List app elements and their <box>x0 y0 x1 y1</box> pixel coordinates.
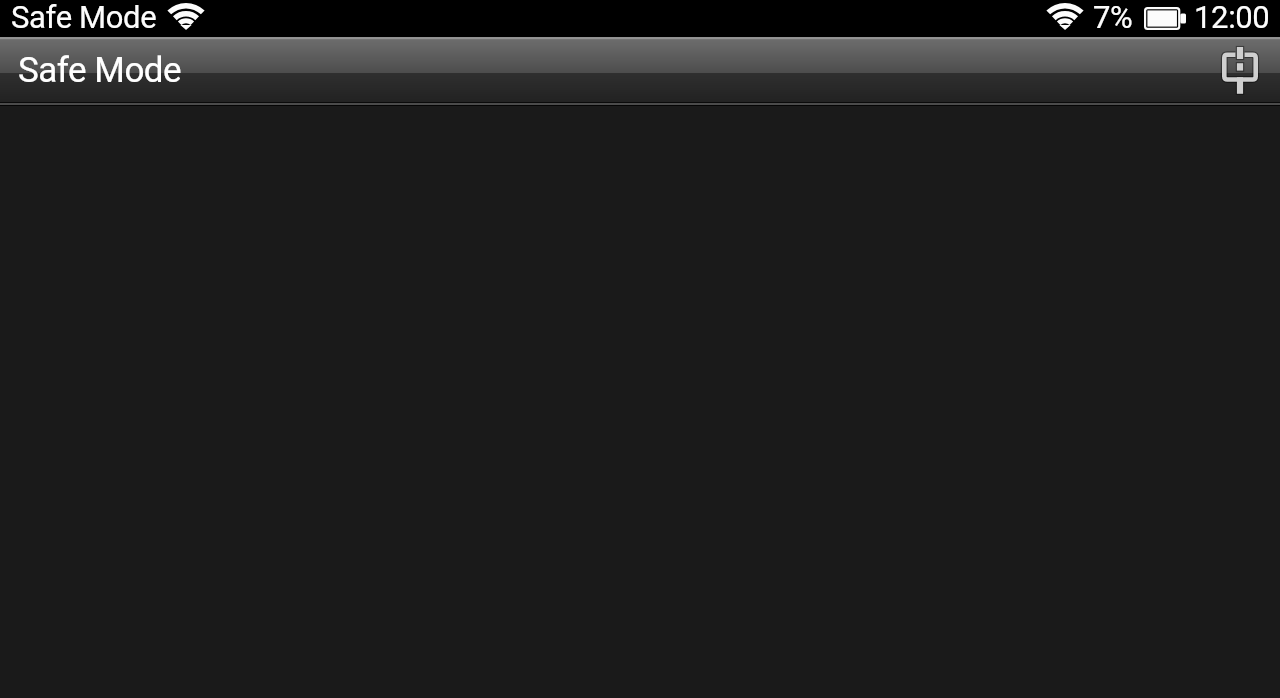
staticText: Safe Mode <box>11 0 157 35</box>
staticText: 7% <box>1093 0 1133 35</box>
staticText: 12:00 <box>1194 0 1270 35</box>
staticText: Safe Mode <box>18 50 182 91</box>
button[interactable]: Unmount storage <box>1207 37 1272 102</box>
